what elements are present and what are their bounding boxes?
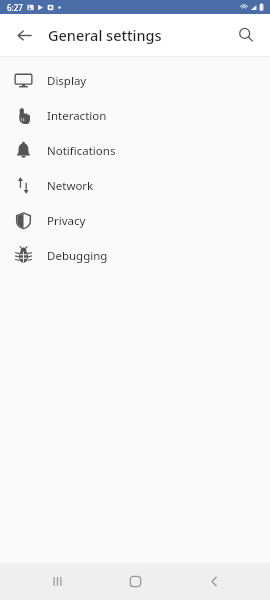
button[interactable]: Back — [192, 563, 236, 600]
button[interactable]: Home — [113, 563, 157, 600]
staticText: Notifications — [47, 143, 116, 159]
button[interactable]: Display — [0, 63, 270, 98]
button[interactable]: Interaction — [0, 98, 270, 133]
button[interactable]: Search — [230, 19, 262, 51]
staticText: Display — [47, 73, 87, 89]
staticText: General settings — [48, 25, 162, 45]
button[interactable]: Privacy — [0, 203, 270, 238]
staticText: 6:27 — [7, 2, 23, 13]
staticText: Privacy — [47, 213, 86, 229]
button[interactable]: Debugging — [0, 238, 270, 273]
staticText: Network — [47, 178, 94, 194]
button[interactable]: Notifications — [0, 133, 270, 168]
staticText: Debugging — [47, 248, 108, 264]
staticText: Interaction — [47, 108, 107, 124]
button[interactable]: Back — [8, 19, 40, 51]
button[interactable]: Network — [0, 168, 270, 203]
button[interactable]: Recent apps — [35, 563, 79, 600]
